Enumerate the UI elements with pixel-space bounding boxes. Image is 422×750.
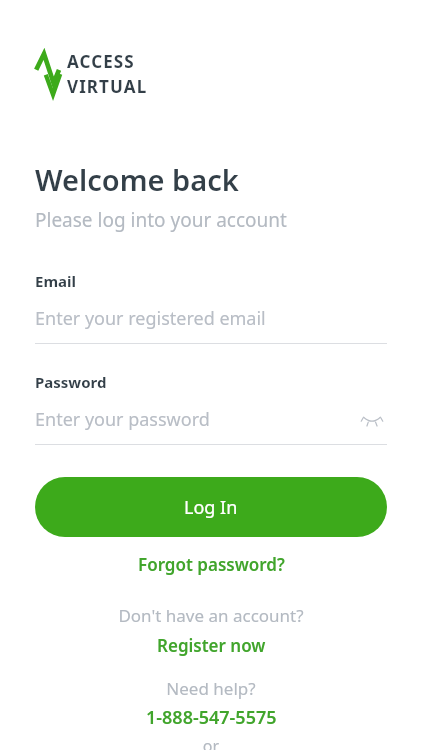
staticText: Log In xyxy=(184,495,238,520)
button[interactable]: Register now xyxy=(35,632,387,659)
button[interactable]: Enter your registered email xyxy=(35,303,387,333)
staticText: Email xyxy=(35,271,76,291)
staticText: Register now xyxy=(157,634,266,657)
staticText: Enter your password xyxy=(35,407,210,432)
staticText: Welcome back xyxy=(35,160,239,199)
staticText: Please log into your account xyxy=(35,207,287,233)
staticText: VIRTUAL xyxy=(67,75,148,98)
staticText: Enter your registered email xyxy=(35,306,266,331)
staticText: ACCESS xyxy=(67,50,135,73)
button[interactable]: Forgot password? xyxy=(35,547,387,582)
button[interactable]: Log In xyxy=(35,477,387,537)
staticText: 1-888-547-5575 xyxy=(146,705,277,730)
staticText: Need help? xyxy=(35,677,387,700)
staticText: Password xyxy=(35,372,107,392)
staticText: or xyxy=(35,735,387,750)
button[interactable]: Enter your password xyxy=(35,404,387,434)
button[interactable]: 1-888-547-5575 xyxy=(35,704,387,731)
staticText: Forgot password? xyxy=(138,553,285,576)
staticText: Don't have an account? xyxy=(35,604,387,627)
button[interactable]: Show password xyxy=(357,404,387,434)
